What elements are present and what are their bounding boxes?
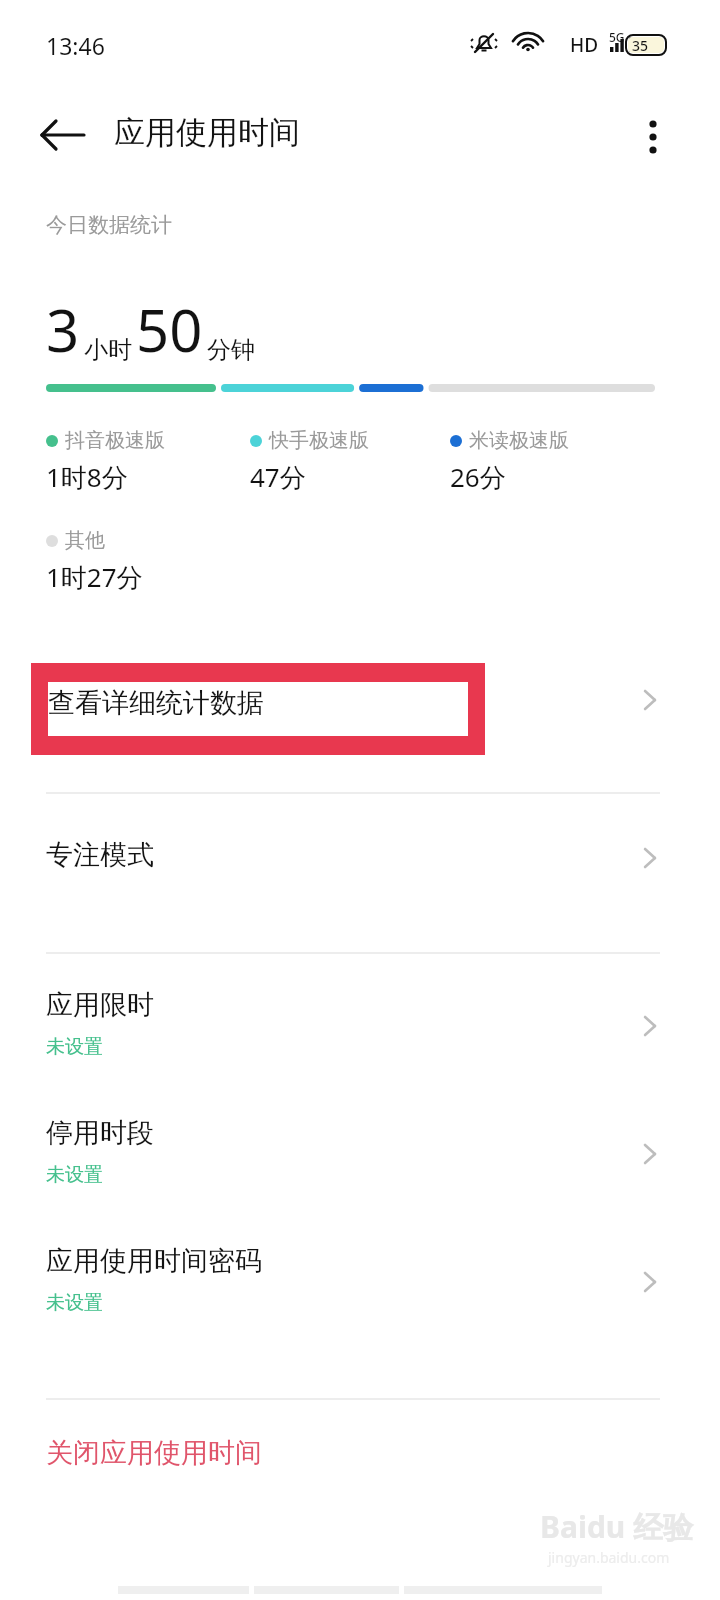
button[interactable]: More options [620, 102, 686, 168]
staticText: 今日数据统计 [46, 212, 172, 238]
staticText: 应用使用时间 [114, 113, 300, 152]
staticText: 50 [136, 290, 203, 369]
staticText: 分钟 [207, 335, 255, 365]
staticText: 未设置 [46, 1163, 103, 1187]
staticText: 1时27分 [46, 559, 143, 595]
staticText: 关闭应用使用时间 [46, 1436, 262, 1470]
staticText: 停用时段 [46, 1116, 154, 1150]
staticText: 应用限时 [46, 988, 154, 1022]
staticText: 47分 [250, 459, 306, 495]
staticText: 查看详细统计数据 [48, 686, 264, 720]
staticText: 35 [632, 36, 649, 55]
button[interactable] [0, 1240, 720, 1392]
staticText: 5G [609, 29, 625, 45]
staticText: 3 [46, 290, 80, 369]
button[interactable] [0, 1112, 720, 1264]
button[interactable] [0, 800, 720, 928]
staticText: jingyan.baidu.com [548, 1548, 670, 1567]
staticText: 抖音极速版 [65, 428, 165, 453]
staticText: 应用使用时间密码 [46, 1244, 262, 1278]
staticText: 米读极速版 [469, 428, 569, 453]
staticText: 13:46 [46, 30, 105, 61]
staticText: 专注模式 [46, 838, 154, 872]
staticText: 未设置 [46, 1035, 103, 1059]
staticText: Baidu 经验 [540, 1506, 694, 1547]
staticText: 其他 [65, 528, 105, 553]
staticText: 快手极速版 [269, 428, 369, 453]
button[interactable]: Back [30, 102, 96, 168]
staticText: 未设置 [46, 1291, 103, 1315]
button[interactable] [0, 1406, 720, 1516]
staticText: 小时 [84, 335, 132, 365]
staticText: 26分 [450, 459, 506, 495]
button[interactable] [0, 645, 720, 763]
button[interactable] [0, 960, 720, 1112]
staticText: 1时8分 [46, 459, 128, 495]
staticText: HD [570, 32, 599, 58]
